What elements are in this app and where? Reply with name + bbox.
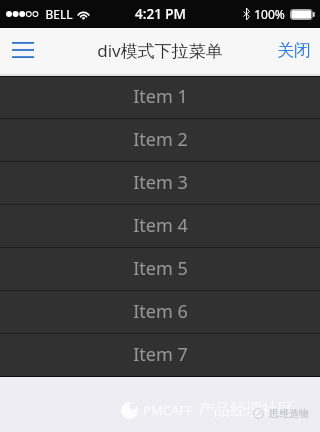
button[interactable]: Item 6: [0, 291, 320, 334]
staticText: BELL: [45, 6, 73, 22]
button[interactable]: 关闭: [263, 28, 320, 76]
staticText: 关闭: [277, 40, 311, 61]
staticText: PMCAFF: [143, 401, 193, 419]
button[interactable]: Menu: [0, 28, 46, 76]
staticText: Item 5: [133, 256, 188, 281]
staticText: Item 4: [133, 213, 188, 238]
button[interactable]: Item 2: [0, 119, 320, 162]
button[interactable]: Item 7: [0, 334, 320, 377]
staticText: div模式下拉菜单: [97, 39, 223, 62]
staticText: 思维造物: [269, 407, 309, 420]
staticText: Item 1: [133, 84, 188, 109]
button[interactable]: Item 1: [0, 76, 320, 119]
staticText: Item 6: [133, 299, 188, 324]
staticText: Item 7: [133, 342, 188, 367]
staticText: 4:21 PM: [135, 5, 186, 23]
staticText: 100%: [254, 6, 285, 22]
staticText: Item 2: [133, 127, 188, 152]
staticText: Item 3: [133, 170, 188, 195]
button[interactable]: Item 3: [0, 162, 320, 205]
button[interactable]: Item 4: [0, 205, 320, 248]
staticText: 产品经理社区: [198, 400, 294, 420]
button[interactable]: Item 5: [0, 248, 320, 291]
